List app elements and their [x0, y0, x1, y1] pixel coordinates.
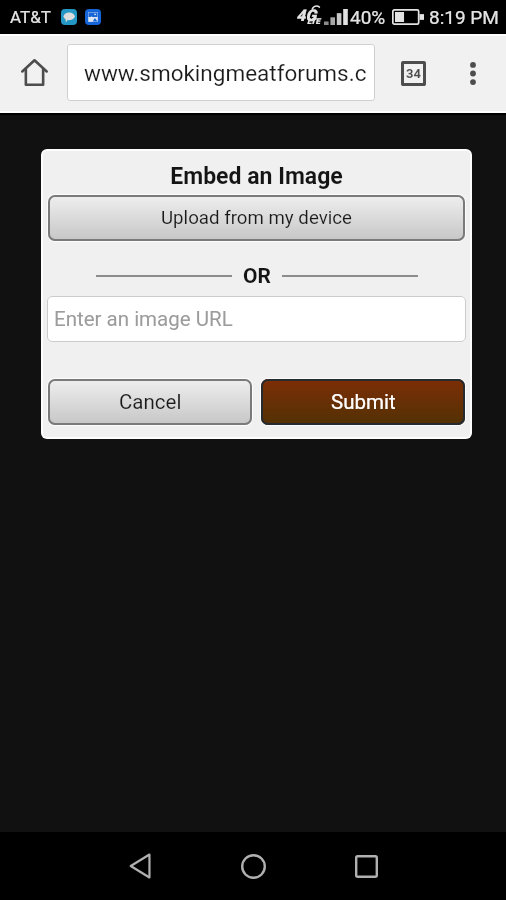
- staticText: www.smokingmeatforums.c: [84, 60, 367, 86]
- staticText: 8:19 PM: [429, 6, 499, 28]
- staticText: 34: [406, 66, 421, 81]
- button[interactable]: www.smokingmeatforums.c: [67, 44, 375, 101]
- staticText: Submit: [331, 390, 396, 414]
- staticText: Upload from my device: [161, 207, 352, 229]
- button[interactable]: Submit: [261, 379, 465, 425]
- button[interactable]: Cancel: [48, 379, 252, 425]
- staticText: Enter an image URL: [54, 307, 233, 331]
- staticText: 40%: [350, 6, 386, 28]
- staticText: Cancel: [119, 390, 182, 414]
- button[interactable]: Home: [225, 838, 281, 894]
- button[interactable]: Upload from my device: [48, 195, 465, 241]
- button[interactable]: More options: [452, 52, 494, 94]
- button[interactable]: Back: [112, 838, 168, 894]
- button[interactable]: Recent apps: [338, 838, 394, 894]
- staticText: Embed an Image: [43, 163, 470, 190]
- staticText: AT&T: [10, 7, 51, 27]
- staticText: LTE: [307, 17, 321, 26]
- staticText: OR: [243, 264, 271, 284]
- button[interactable]: Enter an image URL: [47, 296, 466, 342]
- staticText: 4G: [296, 6, 317, 25]
- button[interactable]: Tabs: [392, 52, 434, 94]
- button[interactable]: Home: [10, 48, 58, 96]
